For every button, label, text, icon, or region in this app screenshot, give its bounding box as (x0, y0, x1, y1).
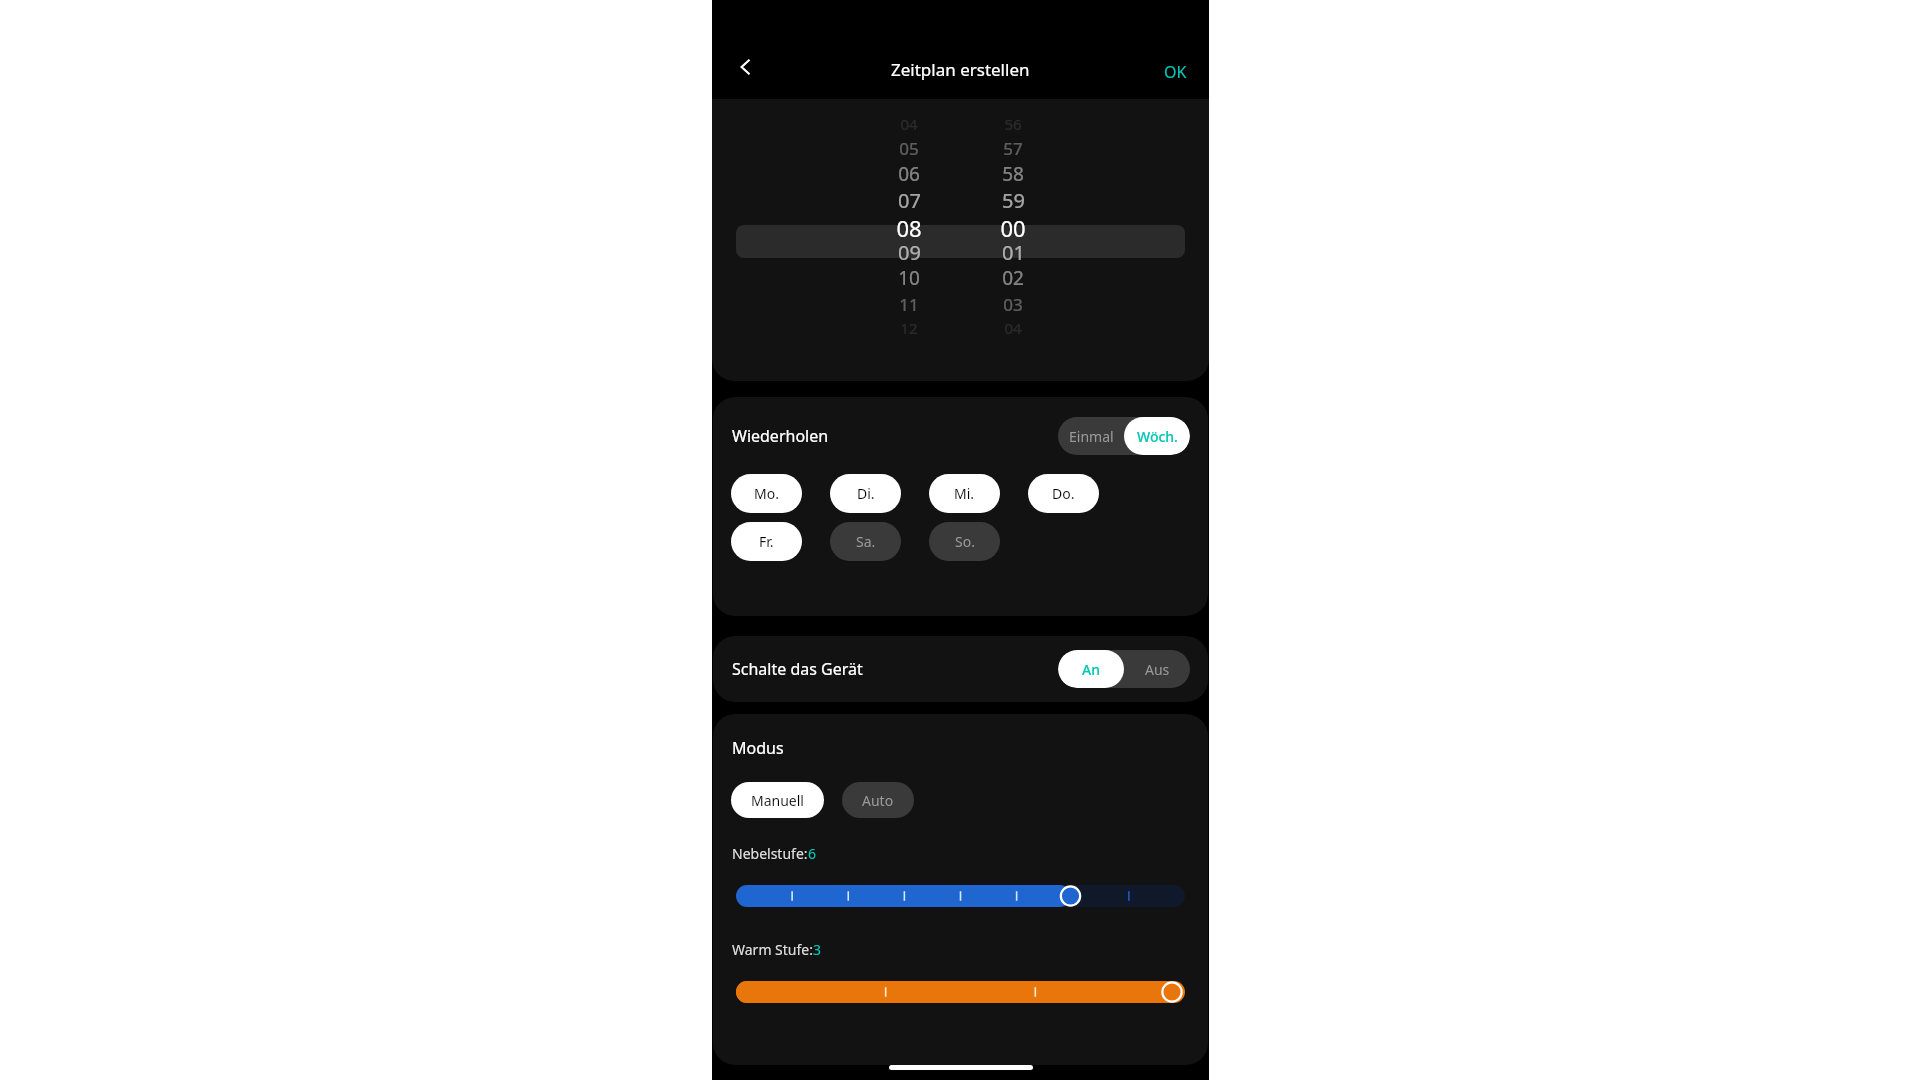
staticText: 01 (1002, 239, 1025, 265)
staticText: 57 (1003, 137, 1023, 160)
button[interactable]: OK (1152, 55, 1199, 89)
button[interactable] (736, 979, 1185, 1005)
staticText: 09 (898, 239, 921, 265)
staticText: 00 (1000, 213, 1026, 239)
button[interactable]: Manuell (731, 782, 824, 818)
staticText: Modus (732, 737, 784, 759)
staticText: Mo. (754, 484, 779, 503)
staticText: Wiederholen (732, 425, 829, 447)
button[interactable] (736, 883, 1185, 909)
staticText: 59 (1002, 187, 1025, 213)
staticText: Einmal (1069, 427, 1114, 446)
button[interactable]: Do. (1028, 474, 1099, 513)
staticText: 08 (896, 213, 922, 239)
staticText: 06 (898, 161, 920, 187)
staticText: 10 (898, 265, 920, 291)
staticText: 58 (1002, 161, 1024, 187)
button[interactable]: Einmal (1058, 417, 1124, 455)
staticText: 05 (899, 137, 919, 160)
staticText: OK (1164, 61, 1187, 83)
staticText: 11 (899, 293, 919, 316)
staticText: Warm Stufe: (732, 940, 813, 959)
staticText: Di. (857, 484, 875, 503)
staticText: Schalte das Gerät (732, 658, 863, 680)
button[interactable]: Auto (842, 782, 914, 818)
button[interactable]: Mi. (929, 474, 1000, 513)
staticText: 3 (813, 940, 822, 959)
button[interactable]: Mo. (731, 474, 802, 513)
staticText: Do. (1052, 484, 1075, 503)
staticText: Zeitplan erstellen (891, 58, 1030, 81)
staticText: 6 (808, 844, 817, 863)
button[interactable]: So. (929, 522, 1000, 561)
staticText: Auto (862, 791, 894, 810)
staticText: 07 (898, 187, 921, 213)
staticText: Aus (1145, 660, 1170, 679)
staticText: 02 (1002, 265, 1024, 291)
staticText: Wöch. (1137, 427, 1178, 446)
button[interactable]: Di. (830, 474, 901, 513)
button[interactable]: Wöch. (1124, 417, 1190, 455)
button[interactable]: Zurück (726, 47, 766, 87)
staticText: Manuell (751, 791, 804, 810)
staticText: Sa. (856, 532, 876, 551)
staticText: Nebelstufe: (732, 844, 808, 863)
staticText: Mi. (954, 484, 975, 503)
button[interactable]: An (1058, 650, 1124, 688)
staticText: 12 (900, 318, 918, 338)
staticText: So. (955, 532, 975, 551)
staticText: 04 (900, 114, 918, 134)
staticText: 03 (1003, 293, 1023, 316)
button[interactable]: Sa. (830, 522, 901, 561)
button[interactable]: Aus (1124, 650, 1190, 688)
staticText: An (1082, 660, 1100, 679)
button[interactable]: Fr. (731, 522, 802, 561)
staticText: Fr. (759, 532, 774, 551)
staticText: 56 (1004, 114, 1022, 134)
staticText: 04 (1004, 318, 1022, 338)
